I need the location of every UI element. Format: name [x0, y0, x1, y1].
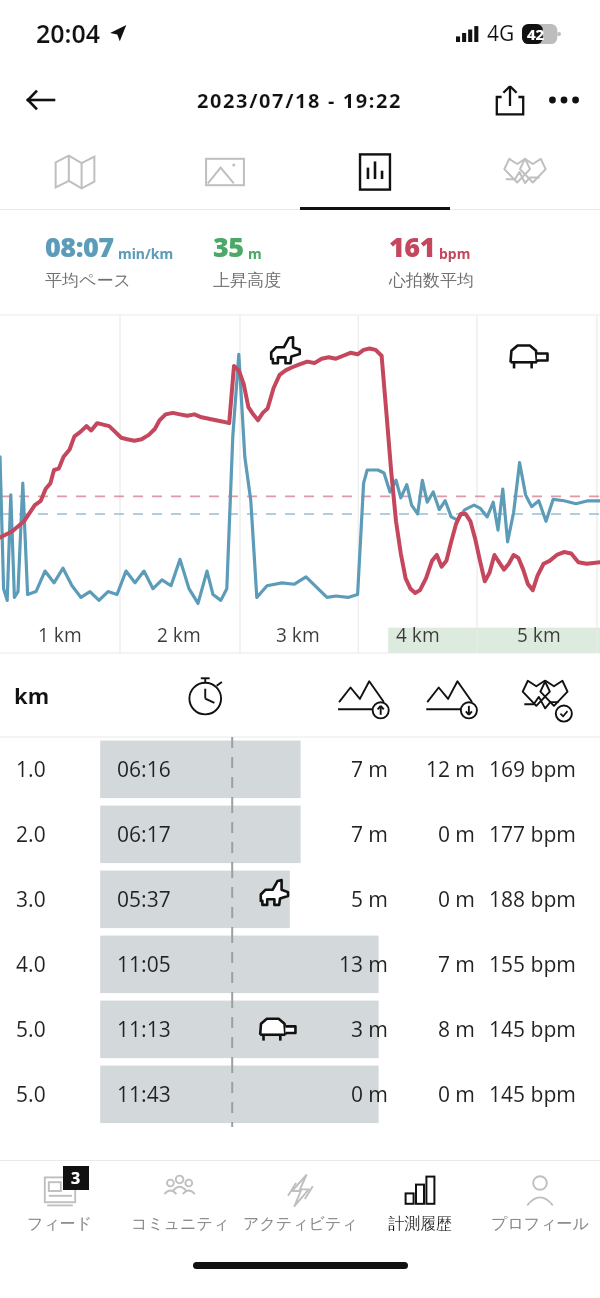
- button[interactable]: 4.0: [0, 932, 600, 997]
- staticText: 08:07: [45, 228, 114, 265]
- staticText: 0 m: [420, 820, 475, 849]
- staticText: 06:16: [117, 755, 171, 784]
- button[interactable]: 1.0: [0, 737, 600, 802]
- button[interactable]: Share: [484, 74, 536, 126]
- staticText: 0 m: [338, 1080, 388, 1109]
- staticText: 1 km: [38, 622, 82, 648]
- staticText: m: [248, 244, 262, 263]
- staticText: 4 km: [396, 622, 440, 648]
- staticText: 5 km: [517, 622, 561, 648]
- staticText: 5.0: [16, 1015, 46, 1044]
- staticText: 12 m: [420, 755, 475, 784]
- staticText: 155 bpm: [480, 950, 576, 979]
- staticText: 2023/07/18 - 19:22: [197, 87, 403, 114]
- staticText: 4.0: [16, 950, 46, 979]
- staticText: 161: [389, 228, 435, 265]
- button[interactable]: アクティビティ: [240, 1161, 360, 1249]
- staticText: 0 m: [420, 1080, 475, 1109]
- staticText: 1.0: [16, 755, 46, 784]
- staticText: min/km: [118, 244, 174, 263]
- staticText: 35: [213, 228, 244, 265]
- staticText: 5 m: [338, 885, 388, 914]
- staticText: 145 bpm: [480, 1015, 576, 1044]
- button[interactable]: More options: [536, 72, 592, 128]
- staticText: 145 bpm: [480, 1080, 576, 1109]
- button[interactable]: 35: [213, 228, 371, 315]
- staticText: 上昇高度: [213, 270, 281, 291]
- staticText: 3 km: [276, 622, 320, 648]
- staticText: 平均ペース: [45, 270, 131, 291]
- staticText: 05:37: [117, 885, 171, 914]
- button[interactable]: Tab: [0, 134, 150, 210]
- staticText: 0 m: [420, 885, 475, 914]
- staticText: コミュニティ: [131, 1214, 230, 1234]
- staticText: 7 m: [338, 820, 388, 849]
- button[interactable]: Tab: [150, 134, 300, 210]
- staticText: 11:13: [117, 1015, 171, 1044]
- staticText: 7 m: [338, 755, 388, 784]
- button[interactable]: 5.0: [0, 997, 600, 1062]
- staticText: 2.0: [16, 820, 46, 849]
- staticText: 177 bpm: [480, 820, 576, 849]
- button[interactable]: 計測履歴: [360, 1161, 480, 1249]
- button[interactable]: Tab: [300, 134, 450, 210]
- staticText: 06:17: [117, 820, 171, 849]
- staticText: bpm: [439, 244, 471, 263]
- staticText: 8 m: [420, 1015, 475, 1044]
- staticText: 4G: [487, 19, 515, 48]
- staticText: 2 km: [157, 622, 201, 648]
- staticText: 20:04: [36, 16, 101, 50]
- staticText: 計測履歴: [388, 1214, 452, 1234]
- staticText: 188 bpm: [480, 885, 576, 914]
- button[interactable]: 3.0: [0, 867, 600, 932]
- button[interactable]: 5.0: [0, 1062, 600, 1127]
- staticText: 心拍数平均: [389, 270, 474, 291]
- staticText: アクティビティ: [243, 1214, 358, 1234]
- staticText: 11:43: [117, 1080, 171, 1109]
- button[interactable]: 08:07: [45, 228, 195, 315]
- staticText: 169 bpm: [480, 755, 576, 784]
- staticText: プロフィール: [491, 1214, 589, 1234]
- staticText: フィード: [27, 1214, 93, 1234]
- staticText: 7 m: [420, 950, 475, 979]
- staticText: 3: [71, 1167, 81, 1189]
- staticText: 3.0: [16, 885, 46, 914]
- button[interactable]: 3: [0, 1161, 120, 1249]
- button[interactable]: コミュニティ: [120, 1161, 240, 1249]
- button[interactable]: 2.0: [0, 802, 600, 867]
- button[interactable]: 161: [389, 228, 600, 315]
- staticText: 42: [527, 24, 545, 44]
- button[interactable]: Tab: [450, 134, 600, 210]
- staticText: 11:05: [117, 950, 171, 979]
- staticText: km: [14, 680, 50, 710]
- staticText: 13 m: [338, 950, 388, 979]
- button[interactable]: プロフィール: [480, 1161, 600, 1249]
- staticText: 5.0: [16, 1080, 46, 1109]
- button[interactable]: Back: [16, 76, 64, 124]
- staticText: 3 m: [338, 1015, 388, 1044]
